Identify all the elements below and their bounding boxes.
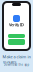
staticText: Download the app [3,63,29,66]
staticText: Make a claim in minutes [2,54,30,65]
staticText: Verify ID [9,22,24,27]
